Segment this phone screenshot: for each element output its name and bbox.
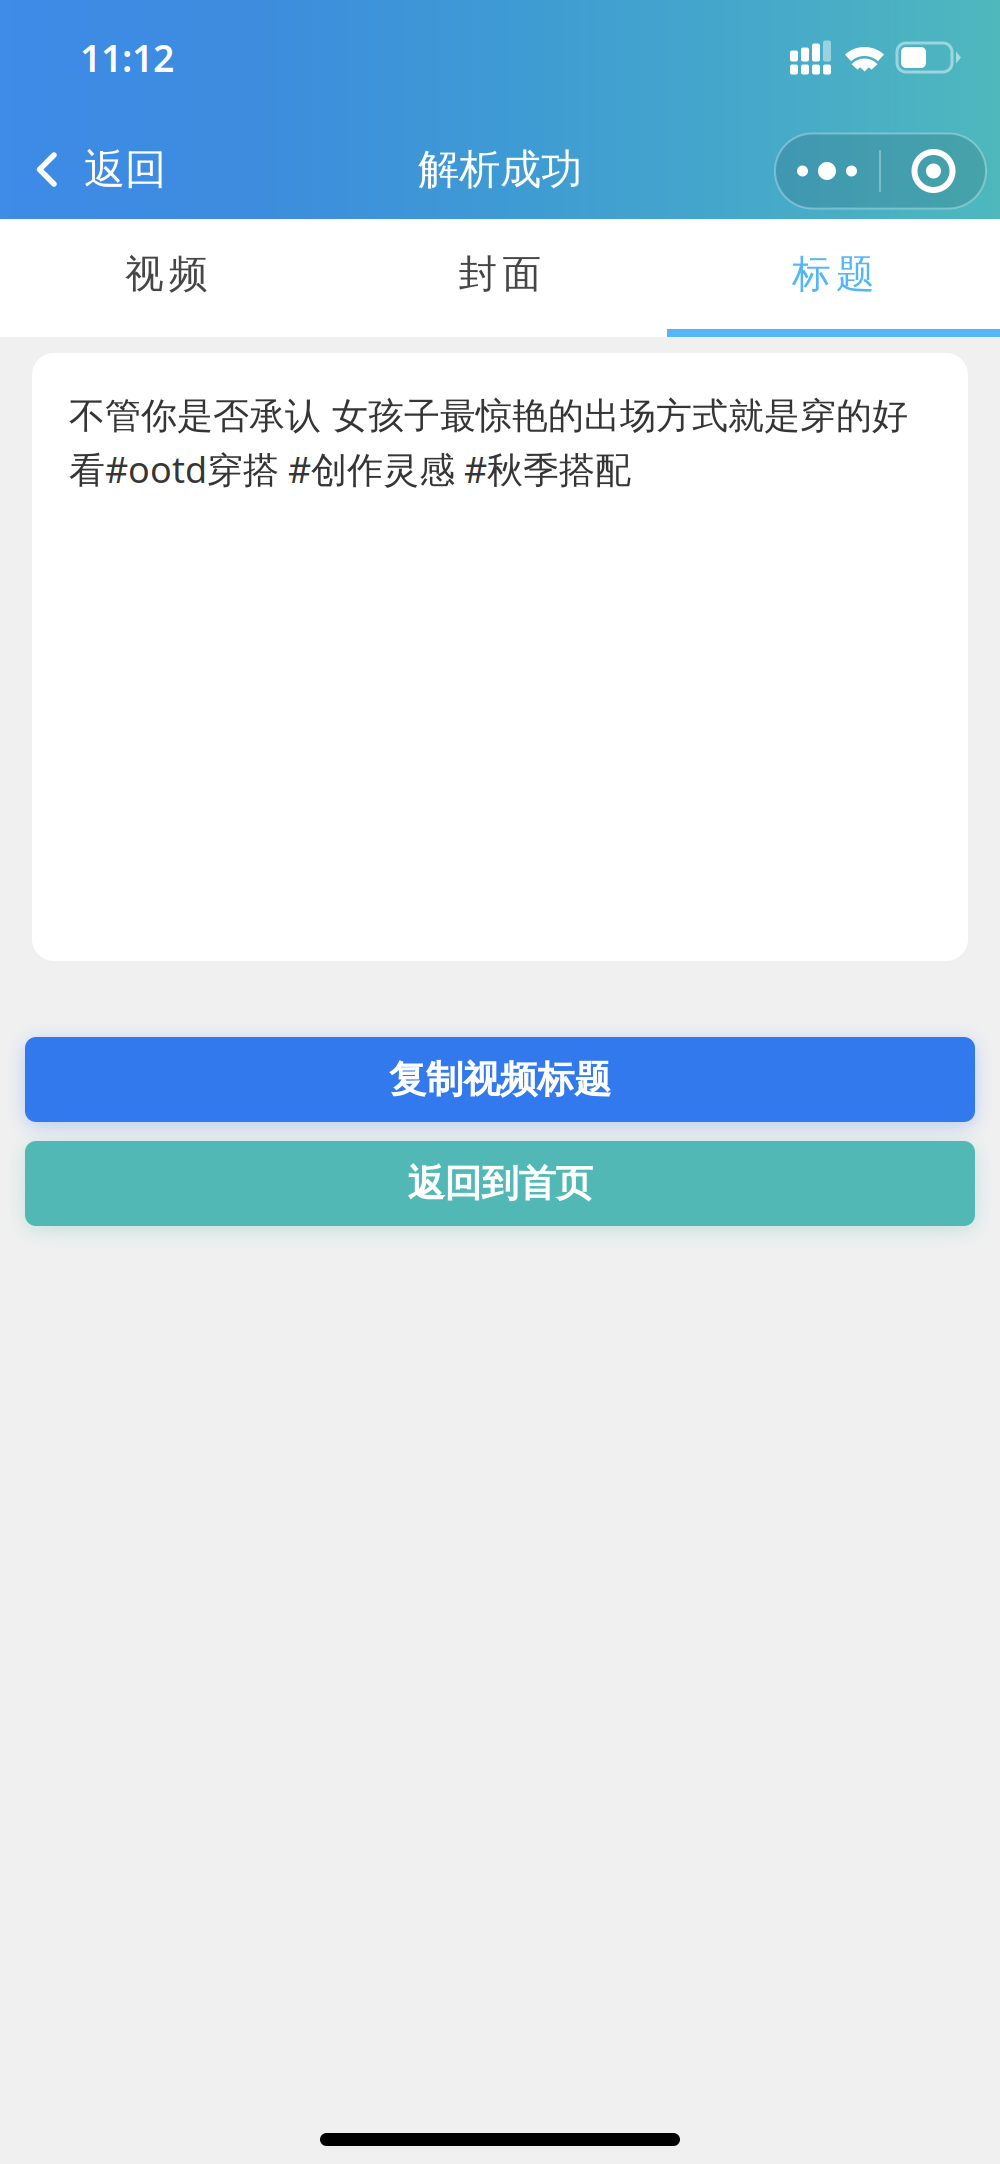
staticText: 封面	[458, 250, 541, 298]
button[interactable]: Close mini program	[881, 133, 986, 208]
staticText: 返回	[84, 144, 166, 195]
staticText: 复制视频标题	[389, 1057, 611, 1102]
staticText: 解析成功	[418, 144, 582, 195]
button[interactable]: 封面	[333, 219, 667, 337]
staticText: 11:12	[80, 33, 174, 82]
staticText: 不管你是否承认 女孩子最惊艳的出场方式就是穿的好看#ootd穿搭 #创作灵感 #…	[69, 394, 908, 493]
button[interactable]: More options	[775, 133, 879, 208]
staticText: 返回到首页	[407, 1161, 592, 1206]
button[interactable]: 返回	[0, 119, 192, 219]
button[interactable]: 复制视频标题	[25, 1037, 975, 1122]
button[interactable]: 返回到首页	[25, 1141, 975, 1226]
staticText: 标题	[792, 250, 875, 298]
button[interactable]: 标题	[667, 219, 1000, 337]
staticText: 视频	[125, 250, 208, 298]
button[interactable]: 视频	[0, 219, 333, 337]
